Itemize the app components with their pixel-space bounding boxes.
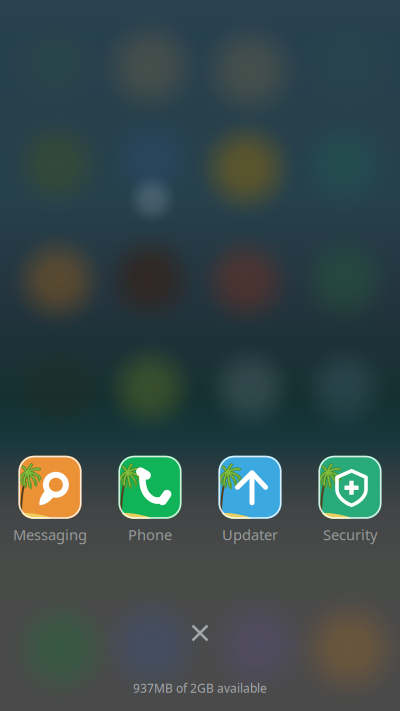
staticText: 937MB of 2GB available [133,680,267,696]
staticText: Phone [128,525,172,544]
button[interactable]: Security [300,456,400,544]
staticText: Security [323,525,377,544]
staticText: Updater [222,525,278,544]
button[interactable]: Phone [100,456,200,544]
button[interactable]: Close folder [179,612,221,654]
button[interactable]: Messaging [0,456,100,544]
staticText: Messaging [13,525,87,544]
button[interactable]: Updater [200,456,300,544]
